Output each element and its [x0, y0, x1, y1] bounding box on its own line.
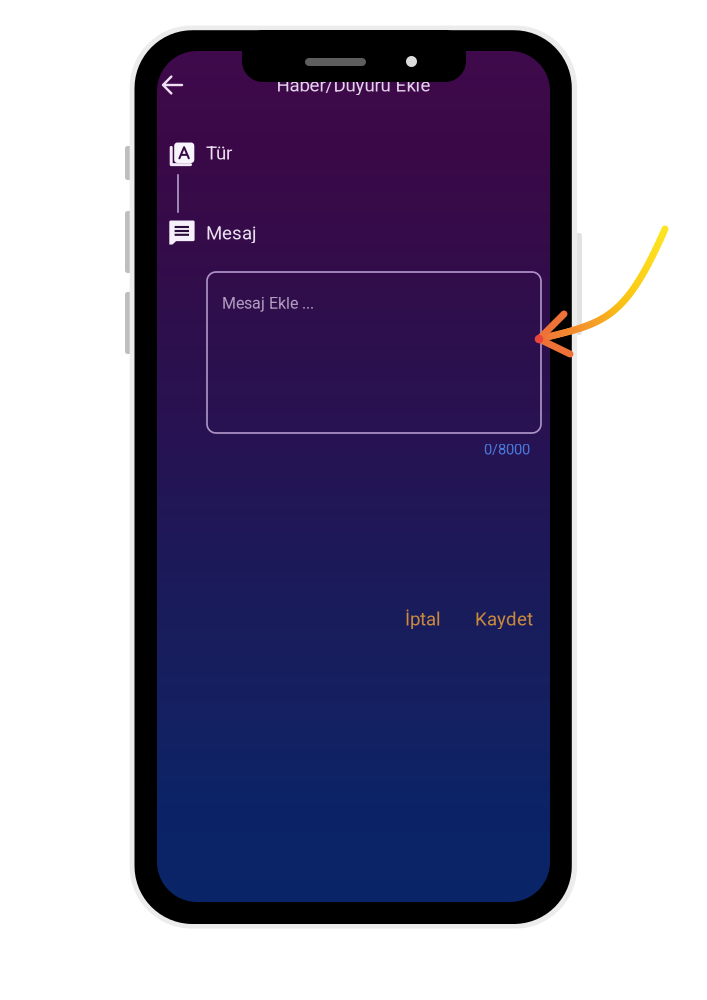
button[interactable]: Mesaj Ekle ...: [207, 272, 541, 433]
staticText: Haber/Duyuru Ekle: [276, 74, 430, 96]
button[interactable]: Back: [159, 64, 205, 106]
staticText: Mesaj: [206, 222, 256, 244]
button[interactable]: Kaydet: [475, 608, 533, 630]
button[interactable]: İptal: [405, 608, 441, 630]
staticText: 0/8000: [484, 441, 530, 458]
button[interactable]: Mesaj: [167, 217, 538, 249]
button[interactable]: Tür: [167, 137, 538, 169]
staticText: İptal: [405, 608, 441, 630]
staticText: Kaydet: [475, 608, 533, 630]
staticText: Tür: [206, 142, 232, 164]
staticText: Mesaj Ekle ...: [222, 294, 314, 313]
